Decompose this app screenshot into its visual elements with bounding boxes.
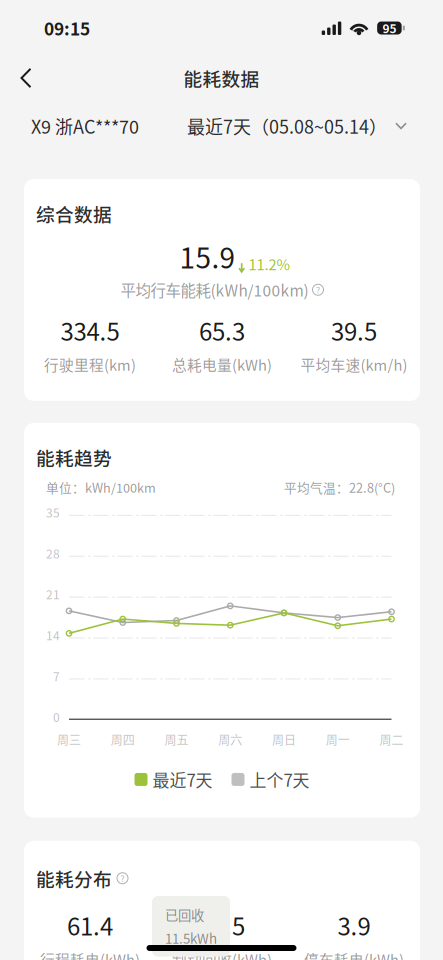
staticText: 能耗趋势 xyxy=(36,444,112,471)
staticText: 综合数据 xyxy=(36,200,112,227)
staticText: 能耗分布 xyxy=(36,865,112,892)
button[interactable]: Back xyxy=(0,56,52,100)
staticText: 11.2% xyxy=(248,253,290,274)
staticText: 周四 xyxy=(111,731,135,748)
staticText: 周六 xyxy=(218,731,242,748)
staticText: 周二 xyxy=(379,731,403,748)
staticText: 95 xyxy=(382,19,396,37)
staticText: 最近7天（05.08~05.14） xyxy=(187,113,387,139)
staticText: 周三 xyxy=(57,731,81,748)
staticText: 7 xyxy=(53,667,60,685)
staticText: 平均车速(km/h) xyxy=(300,354,407,375)
staticText: 周一 xyxy=(326,731,350,748)
staticText: 上个7天 xyxy=(249,767,309,792)
staticText: 21 xyxy=(46,585,60,603)
staticText: 09:15 xyxy=(44,15,90,41)
staticText: ? xyxy=(316,283,320,296)
staticText: 平均行车能耗(kWh/100km) xyxy=(120,279,308,301)
staticText: 行程耗电(kWh) xyxy=(40,948,140,960)
button[interactable]: 最近7天（05.08~05.14） xyxy=(187,113,443,139)
staticText: 39.5 xyxy=(331,313,377,348)
staticText: 总耗电量(kWh) xyxy=(172,354,272,375)
staticText: 11.5kWh xyxy=(165,928,217,948)
staticText: ? xyxy=(120,872,124,884)
staticText: 65.3 xyxy=(199,313,245,348)
staticText: 能耗数据 xyxy=(183,64,259,91)
staticText: 14 xyxy=(46,626,60,644)
staticText: 35 xyxy=(46,504,60,521)
staticText: 11.5 xyxy=(199,908,245,943)
staticText: 行驶里程(km) xyxy=(44,354,136,375)
staticText: 3.9 xyxy=(337,908,370,943)
staticText: 停车耗电(kWh) xyxy=(304,948,404,960)
staticText: 平均气温：22.8(°C) xyxy=(284,478,395,496)
staticText: 周五 xyxy=(164,731,188,748)
staticText: 已回收 xyxy=(165,905,204,924)
staticText: 15.9 xyxy=(179,236,235,276)
staticText: 334.5 xyxy=(60,313,119,348)
staticText: 28 xyxy=(46,544,60,562)
staticText: 单位：kWh/100km xyxy=(46,478,156,496)
staticText: 最近7天 xyxy=(152,767,212,792)
staticText: 周日 xyxy=(272,731,296,748)
staticText: 0 xyxy=(53,708,60,725)
staticText: X9 浙AC***70 xyxy=(31,113,139,139)
staticText: 61.4 xyxy=(67,908,113,943)
staticText: 制动回收(kWh) xyxy=(172,948,272,960)
